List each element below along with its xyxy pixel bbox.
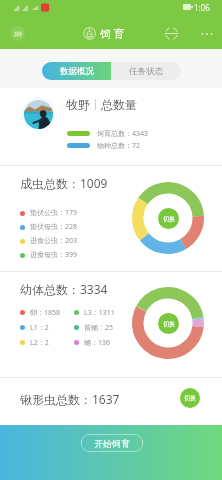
button[interactable]: More options bbox=[198, 25, 215, 42]
staticText: 切换 bbox=[163, 320, 175, 328]
staticText: 蛰伏母虫：228 bbox=[30, 222, 78, 232]
button[interactable]: 任务状态 bbox=[111, 62, 181, 80]
staticText: 卵：1858 bbox=[30, 308, 61, 318]
staticText: 锹形虫总数：1637 bbox=[20, 391, 120, 407]
button[interactable]: 切换 bbox=[158, 313, 179, 334]
staticText: 切换 bbox=[184, 394, 196, 402]
staticText: 饲 育 bbox=[100, 26, 125, 41]
staticText: 蛰伏公虫：179 bbox=[30, 208, 78, 218]
staticText: L2：2 bbox=[30, 338, 49, 348]
staticText: 幼体总数：3334 bbox=[20, 281, 108, 297]
button[interactable]: Expand menu bbox=[10, 26, 25, 41]
staticText: 1:06 bbox=[194, 2, 210, 13]
staticText: 前蛹：25 bbox=[84, 323, 114, 333]
staticText: 牧野 bbox=[66, 97, 90, 112]
staticText: 蛹：136 bbox=[84, 338, 111, 348]
staticText: 饲育总数：4343 bbox=[97, 129, 149, 138]
staticText: L1：2 bbox=[30, 323, 49, 333]
button[interactable]: Scan code bbox=[163, 25, 180, 42]
button[interactable]: 切换 bbox=[158, 208, 179, 229]
staticText: 任务状态 bbox=[129, 66, 163, 77]
button[interactable]: 切换 bbox=[180, 388, 200, 408]
staticText: 进食公虫：203 bbox=[30, 236, 78, 246]
staticText: 进食母虫：399 bbox=[30, 250, 78, 260]
staticText: 切换 bbox=[163, 215, 175, 223]
staticText: 数据概况 bbox=[60, 66, 94, 77]
staticText: 总数量 bbox=[101, 97, 137, 112]
staticText: 物种总数：72 bbox=[97, 141, 141, 150]
staticText: 成虫总数：1009 bbox=[20, 175, 108, 191]
button[interactable]: 开始饲育 bbox=[81, 434, 143, 452]
staticText: 开始饲育 bbox=[94, 438, 130, 449]
button[interactable]: User avatar bbox=[21, 97, 55, 131]
staticText: L3：1311 bbox=[84, 308, 115, 318]
button[interactable]: 数据概况 bbox=[42, 62, 111, 80]
